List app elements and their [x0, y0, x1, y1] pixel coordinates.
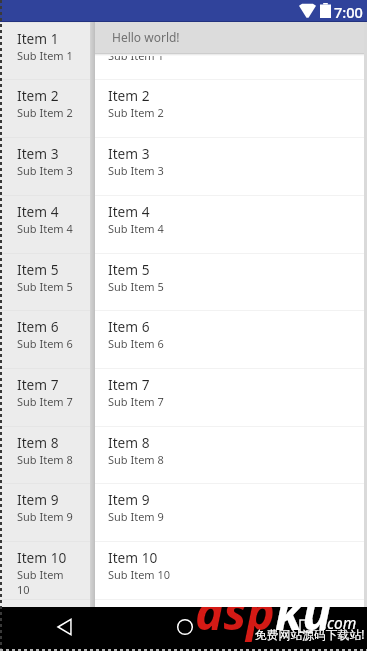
staticText: Sub Item 5 [108, 279, 164, 294]
button[interactable]: Item 3 [0, 137, 90, 195]
button[interactable]: Item 5 [0, 253, 90, 311]
button[interactable]: Item 4 [0, 195, 90, 253]
staticText: Sub Item 1 [17, 48, 73, 63]
button[interactable]: Back [50, 612, 80, 642]
button[interactable]: Item 10 [0, 541, 90, 599]
staticText: Item 4 [17, 202, 59, 221]
staticText: asp [195, 607, 275, 644]
staticText: .com [323, 612, 357, 633]
button[interactable]: Home [170, 612, 200, 642]
button[interactable]: Item 7 [95, 368, 367, 426]
staticText: Item 3 [17, 144, 59, 163]
staticText: 7:00 [334, 2, 363, 22]
staticText: 免费网站源码下载站! [255, 626, 365, 642]
staticText: Item 1 [108, 29, 150, 48]
staticText: Item 6 [108, 317, 150, 336]
button[interactable]: Item 6 [95, 310, 367, 368]
button[interactable]: Item 9 [0, 483, 90, 541]
staticText: Item 10 [108, 548, 158, 567]
staticText: ku [275, 607, 332, 644]
staticText: Item 2 [108, 86, 150, 105]
staticText: Item 2 [17, 86, 59, 105]
staticText: Item 7 [17, 375, 59, 394]
staticText: Item 8 [108, 433, 150, 452]
staticText: Item 10 [17, 548, 67, 567]
staticText: Item 9 [108, 490, 150, 509]
button[interactable]: Item 9 [95, 483, 367, 541]
staticText: Sub Item 8 [108, 452, 164, 467]
staticText: Sub Item 6 [108, 336, 164, 351]
button[interactable]: Item 6 [0, 310, 90, 368]
staticText: Item 3 [108, 144, 150, 163]
button[interactable]: Item 8 [0, 426, 90, 484]
button[interactable]: Item 1 [0, 22, 90, 80]
staticText: Sub Item 7 [108, 394, 164, 409]
staticText: Sub Item 9 [108, 509, 164, 524]
button[interactable]: Item 11 [95, 599, 367, 607]
button[interactable]: Hello world! [95, 22, 367, 53]
staticText: Sub Item 6 [17, 336, 73, 351]
staticText: Sub Item 5 [17, 279, 73, 294]
button[interactable]: Item 11 [0, 599, 90, 607]
button[interactable]: Item 10 [95, 541, 367, 599]
button[interactable]: Item 7 [0, 368, 90, 426]
staticText: Item 4 [108, 202, 150, 221]
staticText: Sub Item 9 [17, 509, 73, 524]
staticText: Item 1 [17, 29, 59, 48]
button[interactable]: Item 2 [95, 79, 367, 137]
staticText: Item 9 [17, 490, 59, 509]
staticText: Sub Item 8 [17, 452, 73, 467]
staticText: Sub Item 2 [108, 105, 164, 120]
button[interactable]: Item 4 [95, 195, 367, 253]
staticText: Item 8 [17, 433, 59, 452]
button[interactable]: Item 1 [95, 22, 367, 80]
button[interactable]: Item 3 [95, 137, 367, 195]
staticText: Item 7 [108, 375, 150, 394]
staticText: Item 5 [108, 260, 150, 279]
staticText: Hello world! [112, 29, 180, 45]
staticText: Item 5 [17, 260, 59, 279]
staticText: Sub Item 4 [17, 221, 73, 236]
staticText: Sub Item 10 [17, 567, 73, 597]
staticText: Sub Item 3 [17, 163, 73, 178]
staticText: Sub Item 10 [108, 567, 171, 582]
staticText: Sub Item 2 [17, 105, 73, 120]
button[interactable]: Item 5 [95, 253, 367, 311]
staticText: Sub Item 1 [108, 48, 164, 63]
button[interactable]: Recent apps [291, 611, 321, 641]
staticText: Sub Item 7 [17, 394, 73, 409]
staticText: Sub Item 3 [108, 163, 164, 178]
button[interactable]: Item 2 [0, 79, 90, 137]
staticText: Item 6 [17, 317, 59, 336]
staticText: Sub Item 4 [108, 221, 164, 236]
button[interactable]: Item 8 [95, 426, 367, 484]
